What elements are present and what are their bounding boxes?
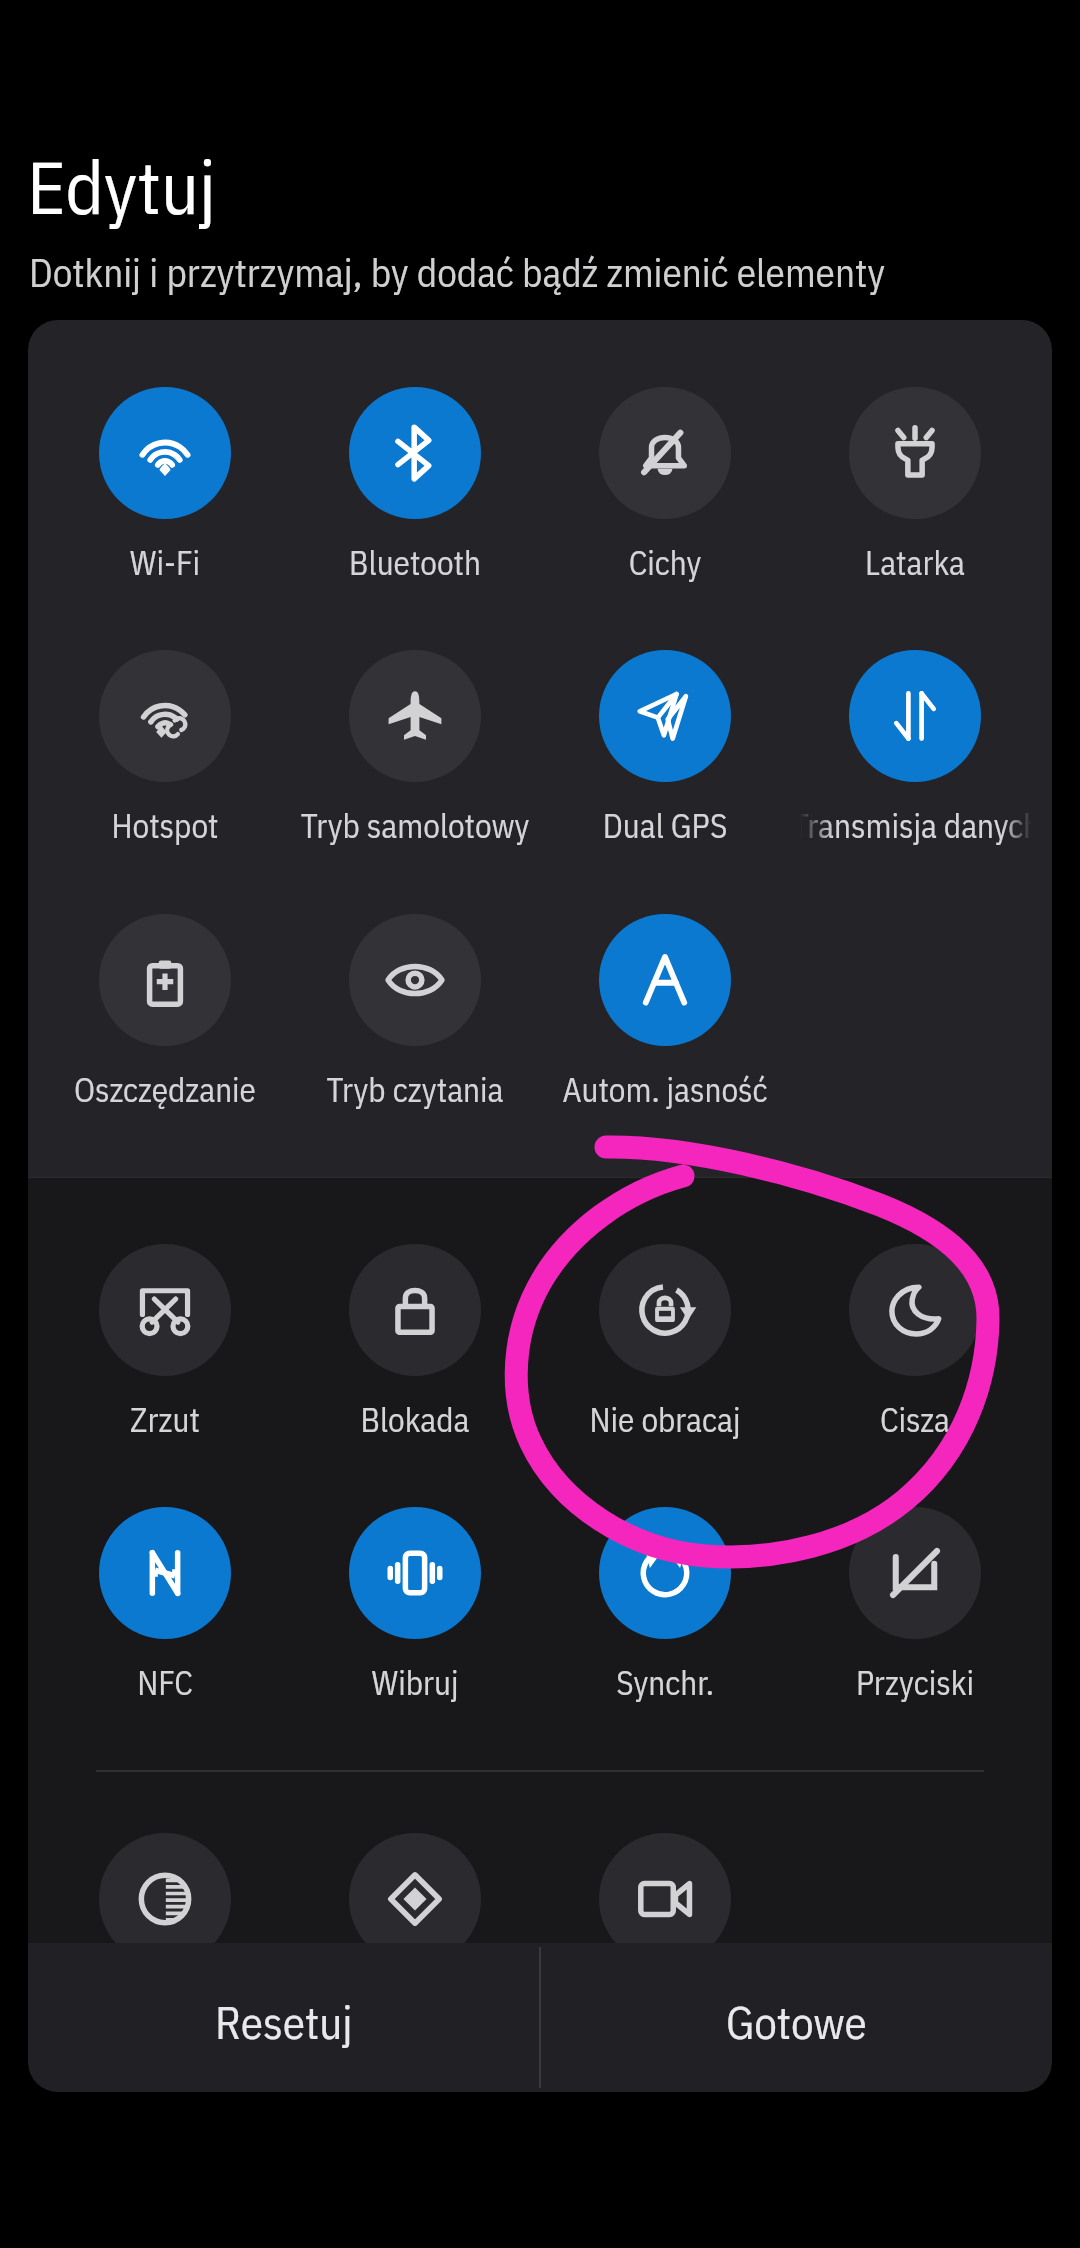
staticText: Oszczędzanie xyxy=(40,1068,290,1114)
button[interactable]: Wibruj xyxy=(290,1489,540,1697)
button[interactable]: Oszczędzanie xyxy=(40,896,290,1104)
staticText: Dotknij i przytrzymaj, by dodać bądź zmi… xyxy=(29,247,886,298)
button[interactable]: Bluetooth xyxy=(290,369,540,577)
button[interactable]: NFC xyxy=(40,1489,290,1697)
button[interactable]: Dual GPS xyxy=(540,632,790,840)
staticText: Synchr. xyxy=(540,1661,790,1707)
button[interactable]: Tryb samolotowy xyxy=(290,632,540,840)
staticText: NFC xyxy=(40,1661,290,1707)
button[interactable]: Latarka xyxy=(790,369,1040,577)
staticText: Gotowe xyxy=(726,1993,867,2052)
staticText: Transmisja danych xyxy=(771,804,1061,850)
staticText: Bluetooth xyxy=(290,541,540,587)
button[interactable]: Transmisja danych xyxy=(790,632,1040,840)
staticText: Autom. jasność xyxy=(540,1068,790,1114)
staticText: Tryb czytania xyxy=(290,1068,540,1114)
button[interactable]: Cisza xyxy=(790,1226,1040,1434)
button[interactable]: Tryb czytania xyxy=(290,896,540,1104)
button[interactable]: Zrzut xyxy=(40,1226,290,1434)
staticText: Edytuj xyxy=(27,138,216,234)
staticText: Przyciski xyxy=(790,1661,1040,1707)
button[interactable]: Synchr. xyxy=(540,1489,790,1697)
staticText: Hotspot xyxy=(40,804,290,850)
button[interactable]: Quick setting tile xyxy=(540,1815,790,1943)
staticText: Dual GPS xyxy=(540,804,790,850)
button[interactable]: Quick setting tile xyxy=(290,1815,540,1943)
button[interactable]: Gotowe xyxy=(541,1948,1052,2097)
button[interactable]: Przyciski xyxy=(790,1489,1040,1697)
staticText: Cichy xyxy=(540,541,790,587)
staticText: Latarka xyxy=(790,541,1040,587)
staticText: Wi-Fi xyxy=(40,541,290,587)
button[interactable]: Nie obracaj xyxy=(540,1226,790,1434)
button[interactable]: Quick setting tile xyxy=(40,1815,290,1943)
staticText: Zrzut xyxy=(40,1398,290,1444)
staticText: Wibruj xyxy=(290,1661,540,1707)
staticText: Blokada xyxy=(290,1398,540,1444)
button[interactable]: Wi-Fi xyxy=(40,369,290,577)
staticText: Nie obracaj xyxy=(540,1398,790,1444)
staticText: Tryb samolotowy xyxy=(290,804,540,850)
staticText: Resetuj xyxy=(215,1993,353,2052)
staticText: Cisza xyxy=(790,1398,1040,1444)
button[interactable]: Cichy xyxy=(540,369,790,577)
button[interactable]: Autom. jasność xyxy=(540,896,790,1104)
button[interactable]: Hotspot xyxy=(40,632,290,840)
button[interactable]: Blokada xyxy=(290,1226,540,1434)
button[interactable]: Resetuj xyxy=(28,1948,540,2097)
